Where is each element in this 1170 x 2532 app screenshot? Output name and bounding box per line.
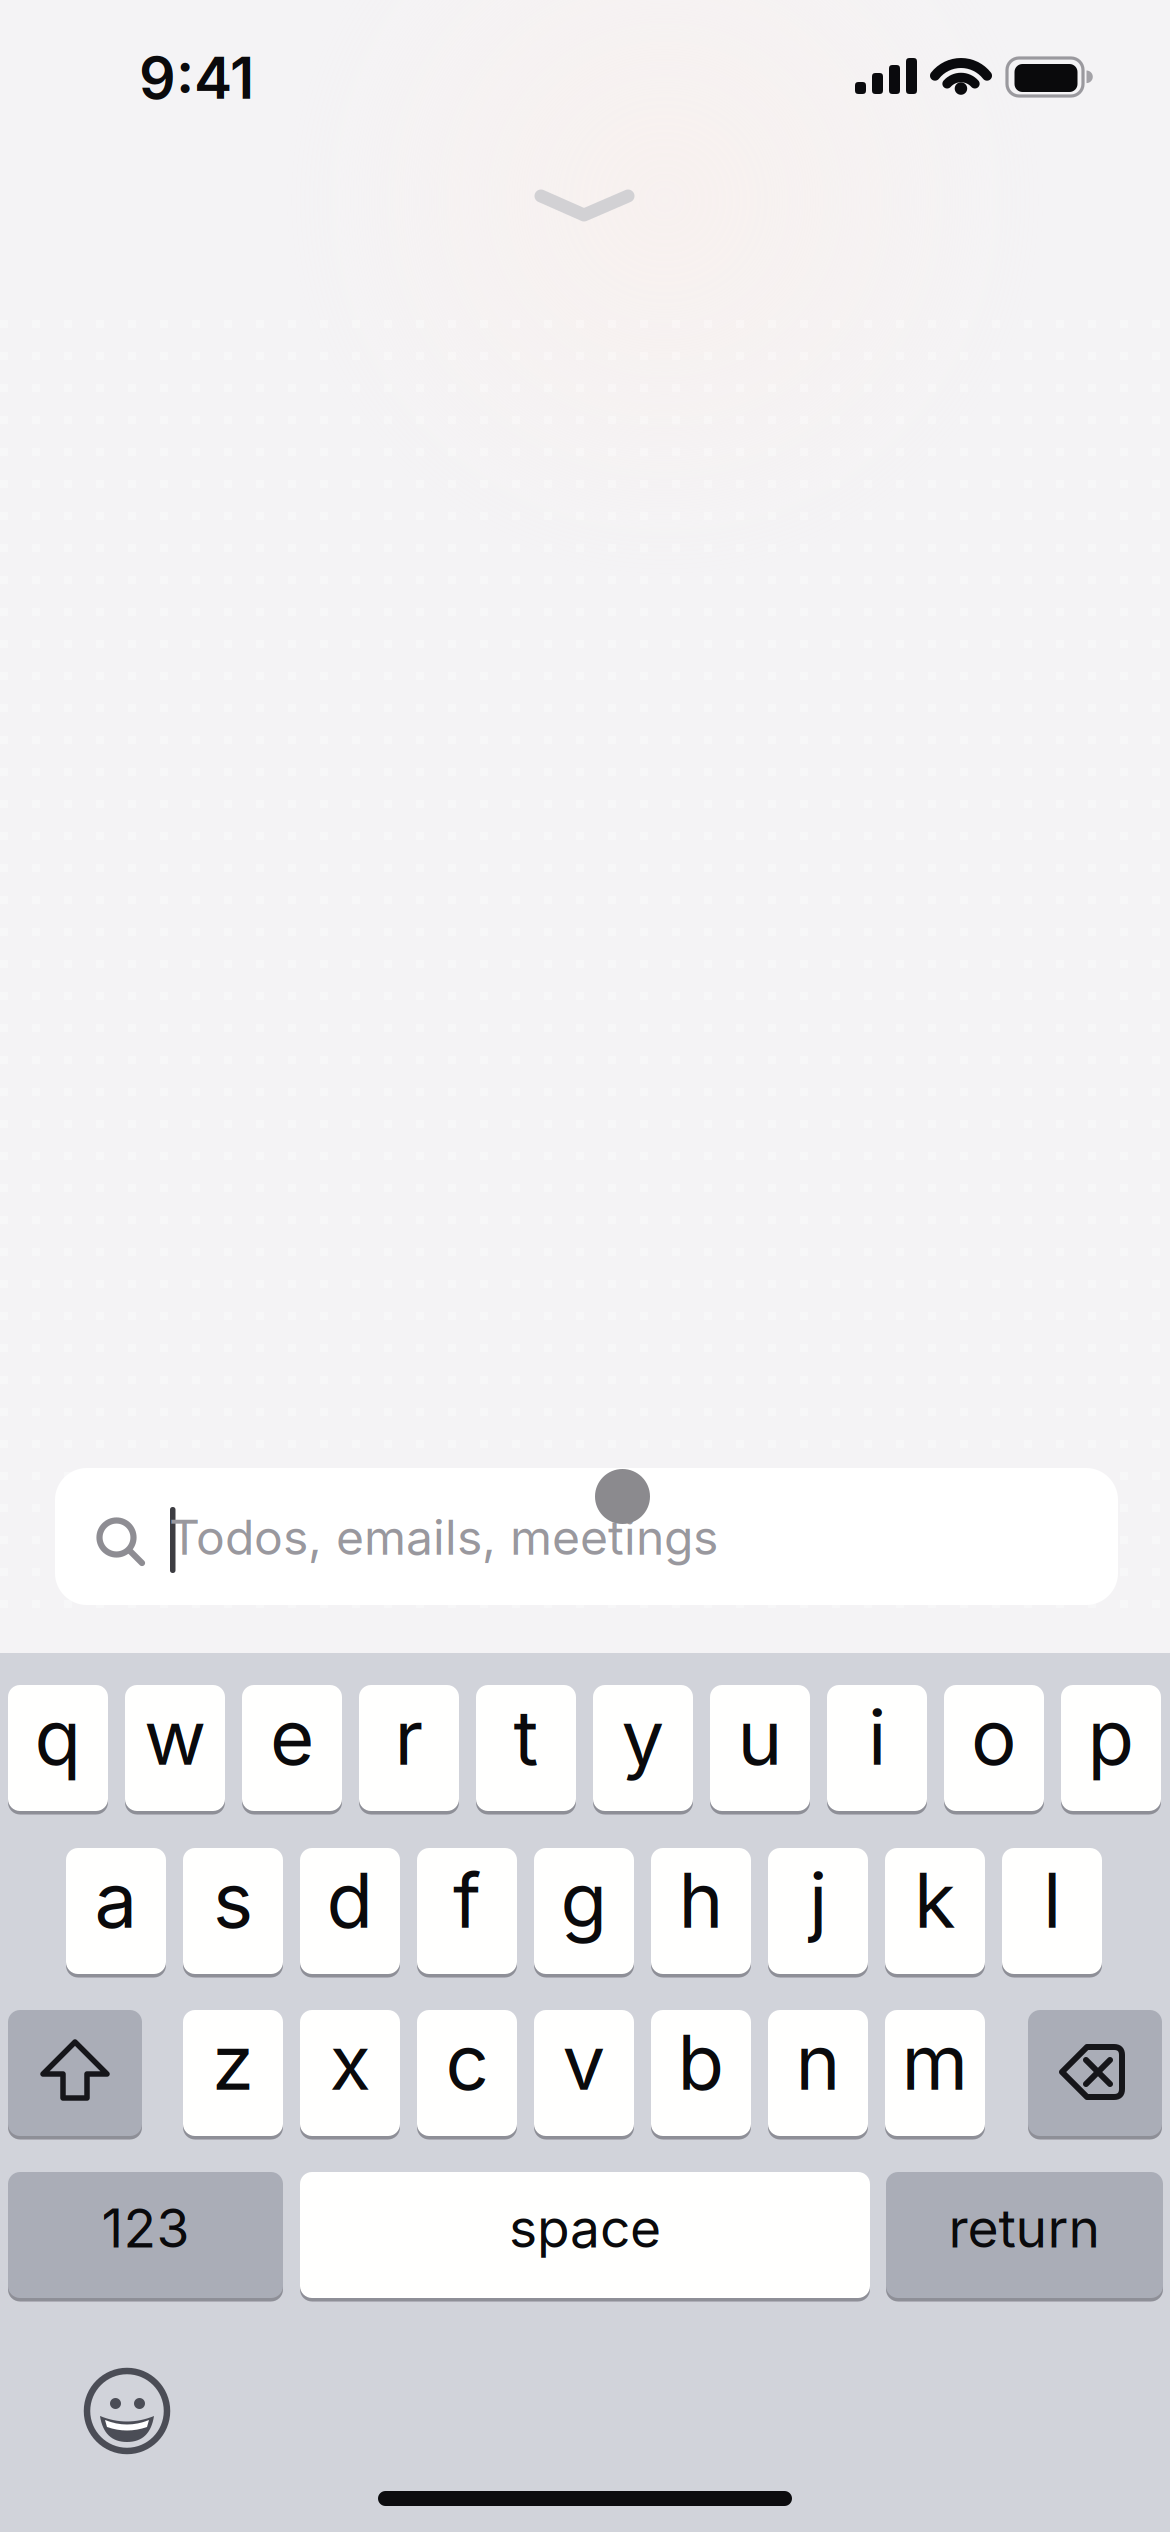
button[interactable]: p: [1061, 1683, 1161, 1813]
button[interactable]: v: [534, 2008, 634, 2138]
button[interactable]: d: [300, 1846, 400, 1976]
staticText: g: [560, 1855, 607, 1945]
staticText: r: [394, 1692, 423, 1782]
staticText: 9:41: [139, 44, 254, 112]
button[interactable]: h: [651, 1846, 751, 1976]
button[interactable]: j: [768, 1846, 868, 1976]
button[interactable]: l: [1002, 1846, 1102, 1976]
staticText: t: [513, 1692, 538, 1782]
staticText: return: [948, 2196, 1100, 2259]
button[interactable]: u: [710, 1683, 810, 1813]
button[interactable]: a: [66, 1846, 166, 1976]
staticText: n: [795, 2017, 840, 2107]
button[interactable]: n: [768, 2008, 868, 2138]
button[interactable]: 123: [8, 2170, 283, 2300]
staticText: h: [678, 1855, 723, 1945]
button[interactable]: x: [300, 2008, 400, 2138]
staticText: i: [868, 1692, 886, 1782]
button[interactable]: Delete: [1028, 2008, 1162, 2138]
button[interactable]: m: [885, 2008, 985, 2138]
staticText: o: [971, 1692, 1017, 1782]
staticText: b: [677, 2017, 724, 2107]
button[interactable]: i: [827, 1683, 927, 1813]
staticText: p: [1087, 1692, 1134, 1782]
button[interactable]: o: [944, 1683, 1044, 1813]
staticText: 123: [101, 2196, 189, 2259]
button[interactable]: b: [651, 2008, 751, 2138]
staticText: f: [453, 1855, 481, 1945]
button[interactable]: q: [8, 1683, 108, 1813]
staticText: d: [326, 1855, 373, 1945]
staticText: c: [445, 2017, 488, 2107]
staticText: l: [1043, 1855, 1061, 1945]
button[interactable]: k: [885, 1846, 985, 1976]
staticText: space: [509, 2196, 661, 2259]
button[interactable]: Search: [55, 1468, 1118, 1605]
staticText: Todos, emails, meetings: [169, 1509, 718, 1566]
button[interactable]: Shift: [8, 2008, 142, 2138]
button[interactable]: t: [476, 1683, 576, 1813]
button[interactable]: e: [242, 1683, 342, 1813]
staticText: z: [212, 2017, 254, 2107]
button[interactable]: c: [417, 2008, 517, 2138]
staticText: e: [270, 1692, 314, 1782]
staticText: a: [94, 1855, 137, 1945]
staticText: u: [737, 1692, 782, 1782]
button[interactable]: s: [183, 1846, 283, 1976]
button[interactable]: Dismiss: [533, 188, 636, 223]
staticText: x: [329, 2017, 370, 2107]
button[interactable]: return: [886, 2170, 1163, 2300]
staticText: s: [213, 1855, 253, 1945]
staticText: q: [34, 1692, 81, 1782]
staticText: w: [144, 1692, 206, 1782]
staticText: m: [901, 2017, 968, 2107]
button[interactable]: space: [300, 2170, 870, 2300]
staticText: k: [914, 1855, 956, 1945]
button[interactable]: y: [593, 1683, 693, 1813]
button[interactable]: w: [125, 1683, 225, 1813]
staticText: y: [621, 1692, 664, 1782]
button[interactable]: r: [359, 1683, 459, 1813]
staticText: v: [562, 2017, 605, 2107]
staticText: j: [809, 1855, 827, 1945]
button[interactable]: f: [417, 1846, 517, 1976]
button[interactable]: z: [183, 2008, 283, 2138]
button[interactable]: Emoji: [87, 2371, 167, 2451]
button[interactable]: g: [534, 1846, 634, 1976]
